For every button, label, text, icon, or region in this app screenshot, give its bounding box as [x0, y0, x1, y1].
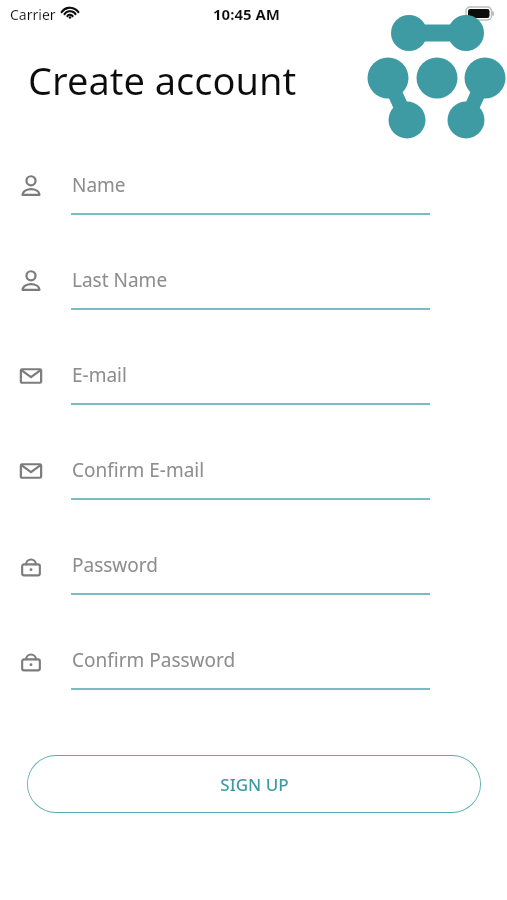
button[interactable]: SIGN UP — [27, 755, 481, 813]
staticText: E-mail — [72, 362, 127, 388]
staticText: Confirm Password — [72, 647, 236, 673]
other: E-mail — [18, 458, 44, 484]
staticText: Name — [72, 172, 126, 198]
staticText: Last Name — [72, 267, 168, 293]
other: Password — [18, 553, 44, 579]
button[interactable]: Confirm Password — [18, 640, 432, 690]
staticText: Carrier — [10, 5, 56, 24]
other: E-mail — [18, 363, 44, 389]
button[interactable]: Last Name — [18, 260, 432, 310]
other: Password — [18, 648, 44, 674]
button[interactable]: Confirm E-mail — [18, 450, 432, 500]
button[interactable]: E-mail — [18, 355, 432, 405]
button[interactable]: Password — [18, 545, 432, 595]
other: Person — [18, 268, 44, 294]
staticText: Confirm E-mail — [72, 457, 205, 483]
button[interactable]: Name — [18, 165, 432, 215]
staticText: 10:45 AM — [213, 4, 280, 24]
staticText: Create account — [28, 54, 297, 106]
other: Person — [18, 173, 44, 199]
staticText: SIGN UP — [220, 773, 289, 796]
staticText: Password — [72, 552, 158, 578]
